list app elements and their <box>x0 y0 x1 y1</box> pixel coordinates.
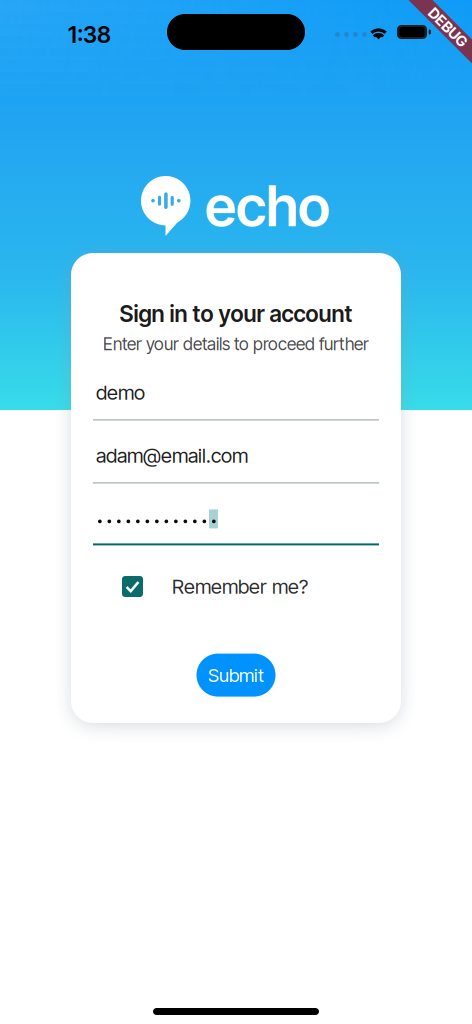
button[interactable]: Remember me? <box>93 574 379 599</box>
staticText: Sign in to your account <box>119 300 352 327</box>
staticText: DEBUG <box>423 19 472 36</box>
staticText: demo <box>96 380 145 405</box>
staticText: Remember me? <box>172 574 308 599</box>
staticText: Submit <box>208 664 264 686</box>
button[interactable]: Submit <box>196 654 275 697</box>
staticText: adam@email.com <box>96 443 248 468</box>
staticText: Enter your details to proceed further <box>103 333 369 354</box>
staticText: 1:38 <box>68 21 111 48</box>
staticText: echo <box>205 172 330 240</box>
